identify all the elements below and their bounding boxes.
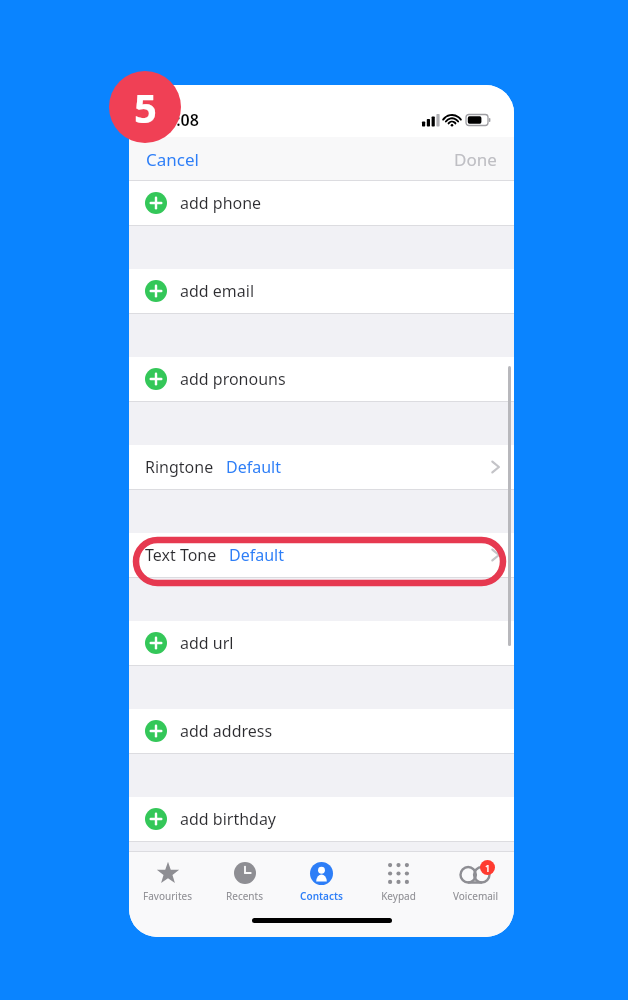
staticText: Default [229,544,284,566]
staticText: Contacts [300,889,343,903]
staticText: Default [226,456,281,478]
button[interactable]: Text Tone [129,533,514,577]
button[interactable]: add pronouns [129,357,514,401]
button[interactable]: Keypad [360,852,437,910]
staticText: Voicemail [453,889,498,903]
staticText: Done [454,148,497,171]
button[interactable]: add birthday [129,797,514,841]
staticText: add phone [180,192,262,214]
staticText: 9:08 [167,109,199,131]
staticText: Text Tone [145,544,217,566]
staticText: add url [180,632,234,654]
button[interactable]: add address [129,709,514,753]
staticText: Favourites [143,889,192,903]
button[interactable]: add email [129,269,514,313]
staticText: add pronouns [180,368,286,390]
button[interactable]: Favourites [129,852,206,910]
button[interactable]: Done [437,137,514,181]
staticText: Recents [226,889,263,903]
button[interactable]: Contacts [283,852,360,910]
staticText: Cancel [146,148,199,171]
staticText: add address [180,720,273,742]
button[interactable]: add url [129,621,514,665]
button[interactable]: Cancel [129,137,216,181]
staticText: add birthday [180,808,277,830]
staticText: Ringtone [145,456,214,478]
staticText: 1 [485,862,491,874]
staticText: Keypad [381,889,416,903]
button[interactable]: Recents [206,852,283,910]
button[interactable]: 1 [437,852,514,910]
staticText: 5 [134,80,157,134]
button[interactable]: add phone [129,181,514,225]
staticText: add email [180,280,255,302]
button[interactable]: Ringtone [129,445,514,489]
